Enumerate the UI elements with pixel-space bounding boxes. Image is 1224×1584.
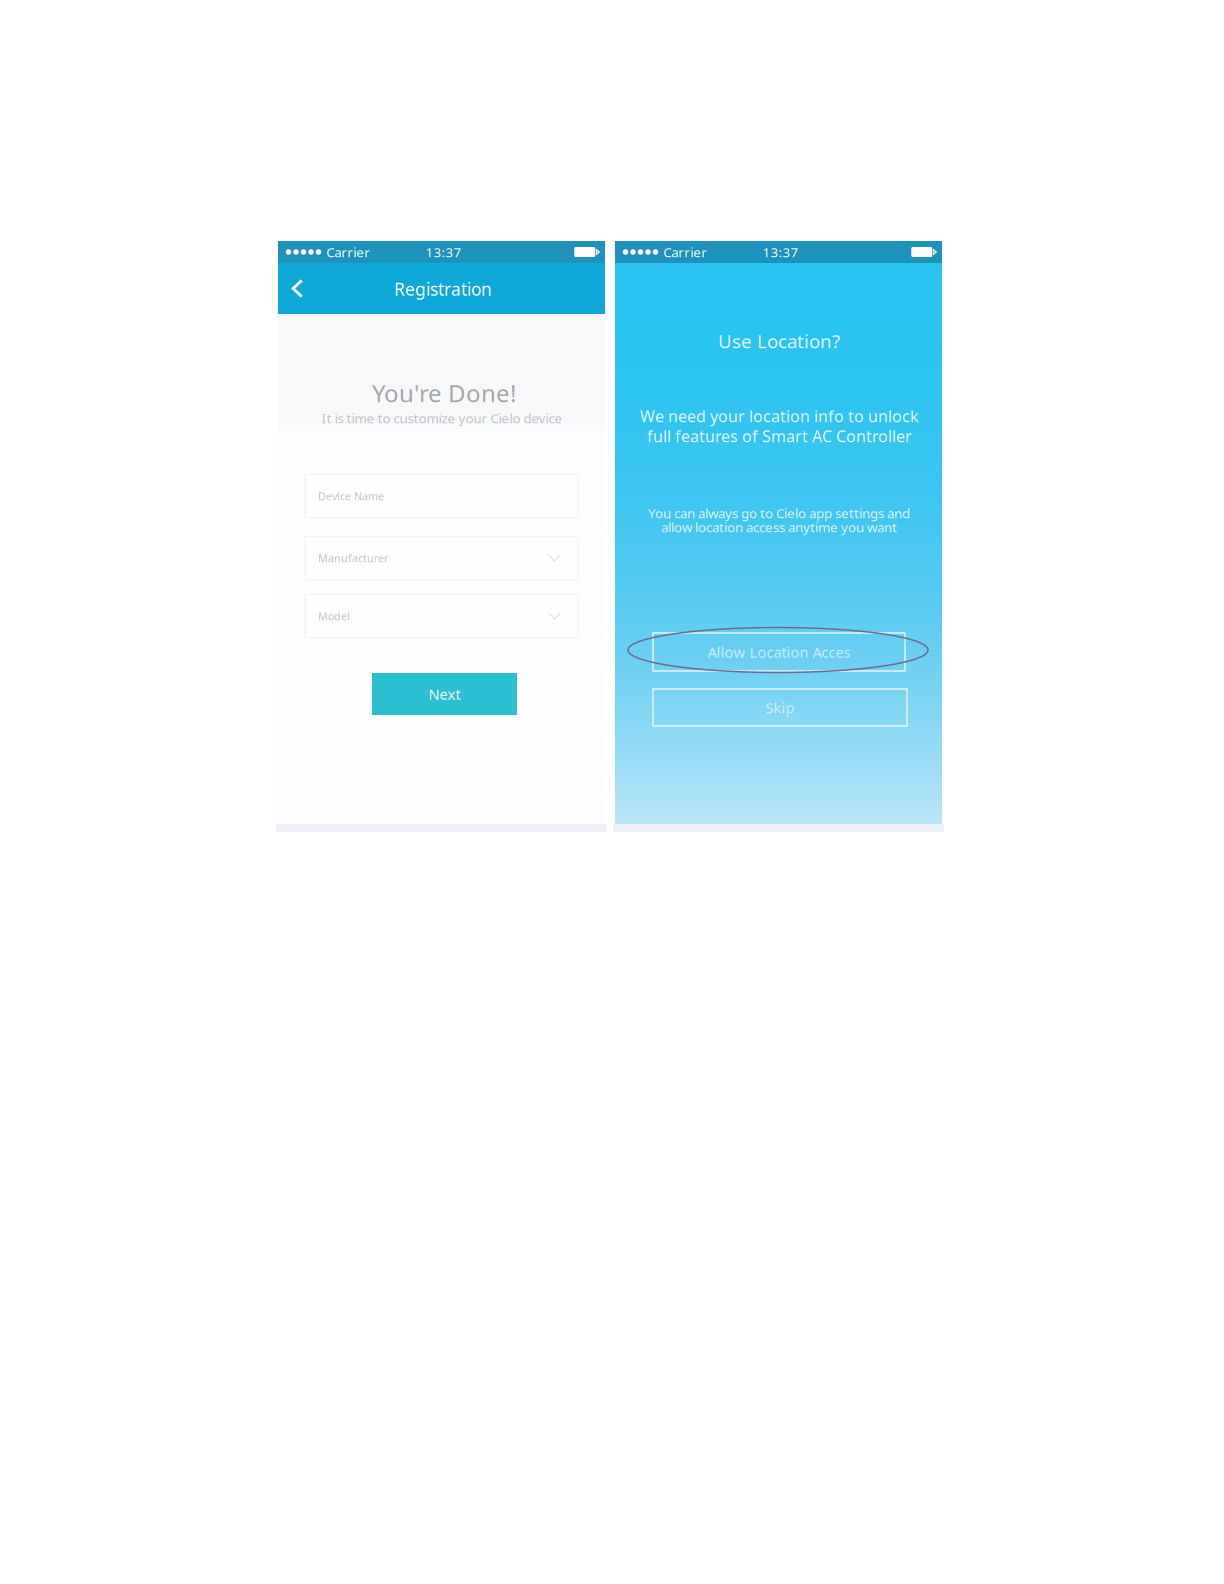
staticText: Next [428, 684, 460, 704]
button[interactable]: Manufacturer [305, 536, 578, 579]
staticText: We need your location info to unlock [640, 405, 919, 427]
staticText: Registration [394, 277, 492, 300]
staticText: Allow Location Acces [707, 642, 850, 662]
staticText: You can always go to Cielo app settings … [648, 504, 910, 522]
staticText: It is time to customize your Cielo devic… [321, 409, 562, 427]
button[interactable]: Allow Location Acces [653, 633, 905, 671]
button[interactable]: Model [305, 594, 578, 637]
staticText: 13:37 [762, 243, 798, 261]
staticText: 13:37 [425, 243, 461, 261]
staticText: Carrier [663, 243, 707, 261]
staticText: You're Done! [372, 377, 516, 409]
staticText: Model [318, 609, 350, 623]
button[interactable]: Device Name [305, 474, 578, 517]
button[interactable]: Next [372, 673, 517, 715]
button[interactable]: Skip [653, 689, 907, 726]
staticText: Manufacturer [318, 551, 388, 565]
staticText: Use Location? [718, 329, 840, 353]
staticText: allow location access anytime you want [661, 518, 897, 536]
staticText: Device Name [318, 489, 384, 503]
staticText: full features of Smart AC Controller [647, 425, 912, 447]
staticText: Skip [765, 698, 794, 717]
staticText: Carrier [326, 243, 370, 261]
button[interactable]: Back [275, 266, 319, 310]
